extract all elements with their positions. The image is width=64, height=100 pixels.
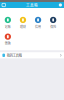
staticText: 理财 — [20, 24, 26, 29]
staticText: 记账 — [5, 24, 11, 29]
staticText: 保险 — [50, 24, 56, 29]
staticText: 我的工具箱 — [7, 53, 22, 58]
button[interactable]: 借款 — [0, 33, 15, 45]
button[interactable]: 保险 — [46, 17, 61, 28]
staticText: 信用 — [35, 24, 41, 29]
button[interactable]: 理财 — [15, 17, 30, 28]
button[interactable]: Add — [57, 2, 64, 8]
button[interactable]: 信用 — [30, 17, 46, 28]
staticText: 工具箱 — [26, 2, 38, 8]
staticText: 借款 — [5, 41, 11, 45]
button[interactable]: Scan — [0, 2, 7, 8]
button[interactable]: 记账 — [0, 17, 15, 28]
button[interactable]: 我的工具箱 — [0, 52, 64, 58]
